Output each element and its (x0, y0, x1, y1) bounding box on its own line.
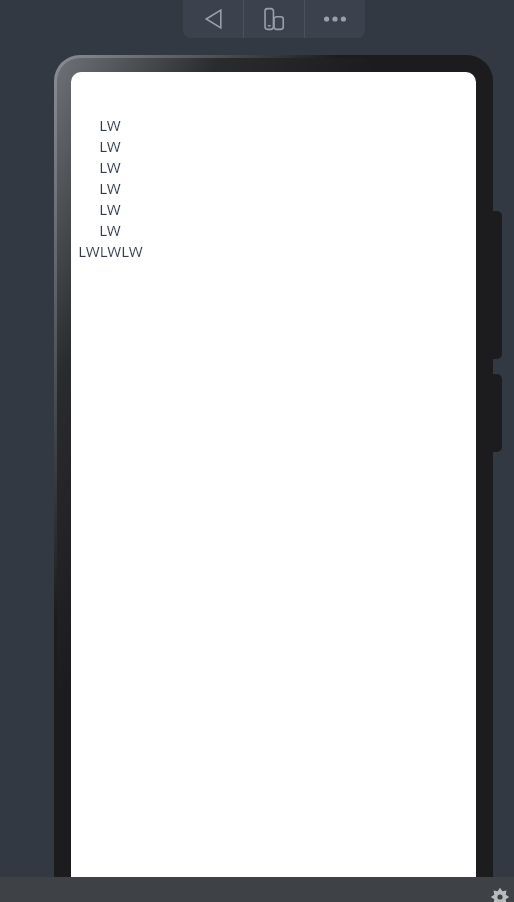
staticText: LW (99, 157, 121, 177)
button[interactable]: LW (71, 177, 149, 198)
staticText: LWLWLW (78, 241, 143, 261)
staticText: LW (99, 178, 121, 198)
button[interactable]: LW (71, 114, 149, 135)
button[interactable]: LW (71, 135, 149, 156)
button[interactable]: LW (71, 219, 149, 240)
button[interactable]: More options (305, 0, 365, 38)
button[interactable]: Volume (487, 374, 502, 452)
staticText: LW (99, 115, 121, 135)
button[interactable]: LW (71, 156, 149, 177)
button[interactable]: Fold device (244, 0, 304, 38)
staticText: LW (99, 220, 121, 240)
button[interactable]: Settings (490, 887, 510, 902)
button[interactable]: LWLWLW (71, 240, 149, 261)
staticText: LW (99, 199, 121, 219)
button[interactable]: Back (183, 0, 243, 38)
staticText: LW (99, 136, 121, 156)
button[interactable]: LW (71, 198, 149, 219)
